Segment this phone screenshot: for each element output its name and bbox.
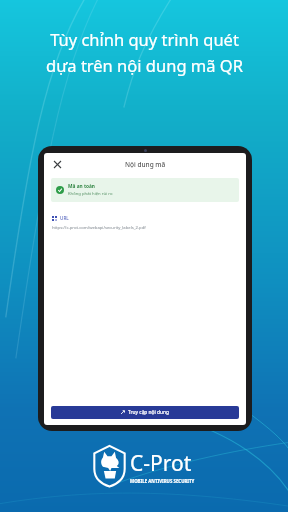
staticText: C-Prot	[130, 449, 192, 478]
staticText: MOBILE ANTIVIRUS SECURITY	[130, 478, 195, 484]
button[interactable]: Truy cập nội dung	[51, 406, 239, 419]
staticText: https://c-prot.com/webapi/security_label…	[52, 225, 146, 231]
staticText: Không phát hiện rủi ro	[68, 191, 113, 197]
button[interactable]: Mã an toàn	[51, 178, 239, 202]
staticText: Mã an toàn	[68, 183, 95, 190]
staticText: Nội dung mã	[125, 160, 166, 169]
staticText: Truy cập nội dung	[128, 409, 170, 416]
button[interactable]: Close	[50, 157, 64, 171]
staticText: dựa trên nội dung mã QR	[46, 54, 243, 76]
staticText: URL	[60, 215, 69, 221]
staticText: Tùy chỉnh quy trình quét	[50, 28, 239, 50]
